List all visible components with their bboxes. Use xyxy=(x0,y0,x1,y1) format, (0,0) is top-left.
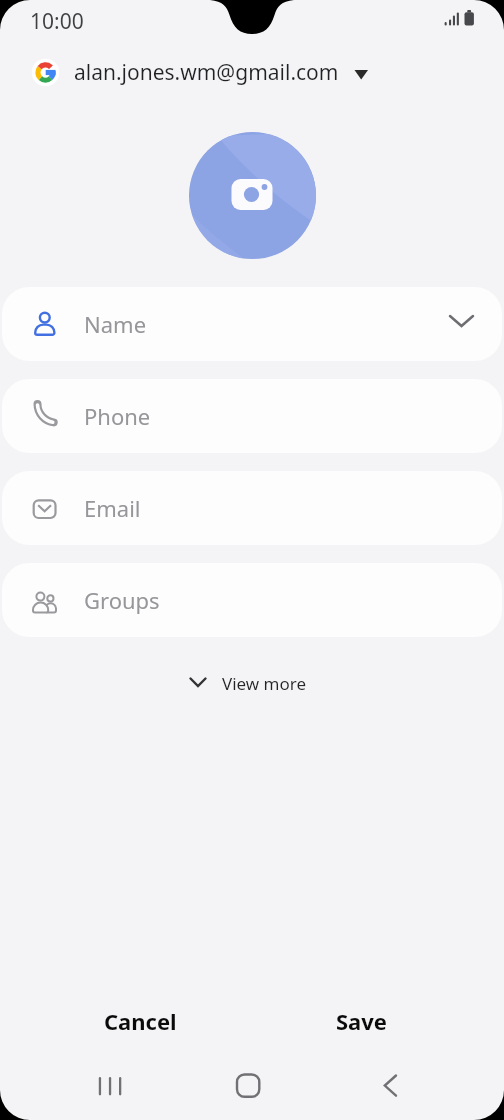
button[interactable]: View more xyxy=(170,663,330,703)
staticText: Name xyxy=(84,309,147,339)
staticText: Groups xyxy=(84,585,160,615)
staticText: Cancel xyxy=(104,1006,177,1036)
button[interactable] xyxy=(360,1064,420,1108)
staticText: 10:00 xyxy=(30,7,84,36)
button[interactable]: Email xyxy=(2,471,502,545)
button[interactable] xyxy=(218,1064,278,1108)
button[interactable] xyxy=(189,132,316,259)
button[interactable]: Cancel xyxy=(80,998,200,1044)
staticText: View more xyxy=(222,672,307,695)
button[interactable]: Phone xyxy=(2,379,502,453)
button[interactable]: Name xyxy=(2,287,502,361)
button[interactable]: Groups xyxy=(2,563,502,637)
button[interactable]: alan.jones.wm@gmail.com xyxy=(26,52,378,92)
staticText: Save xyxy=(336,1006,387,1036)
staticText: Phone xyxy=(84,401,151,431)
button[interactable] xyxy=(79,1064,139,1108)
button[interactable]: Save xyxy=(301,998,421,1044)
staticText: Email xyxy=(84,493,141,523)
staticText: alan.jones.wm@gmail.com xyxy=(74,58,339,87)
